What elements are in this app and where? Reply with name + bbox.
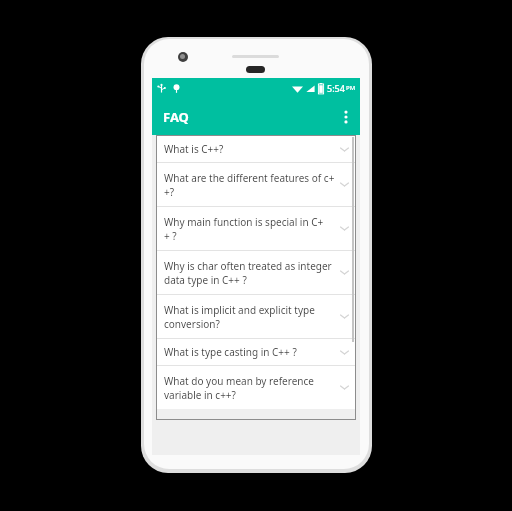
button[interactable]: What is type casting in C++ ?	[157, 339, 355, 365]
staticText: What do you mean by reference variable i…	[164, 374, 335, 402]
staticText: What are the different features of c++?	[164, 171, 335, 199]
button[interactable]: What are the different features of c++?	[157, 163, 355, 206]
staticText: What is C++?	[164, 142, 335, 156]
button[interactable]: What is implicit and explicit type conve…	[157, 295, 355, 338]
staticText: PM	[346, 84, 356, 92]
staticText: What is implicit and explicit type conve…	[164, 303, 335, 331]
staticText: Why main function is special in C++ ?	[164, 215, 335, 243]
button[interactable]: What is C++?	[157, 136, 355, 162]
staticText: FAQ	[163, 108, 189, 126]
button[interactable]: What do you mean by reference variable i…	[157, 366, 355, 409]
button[interactable]: Why is char often treated as integer dat…	[157, 251, 355, 294]
staticText: Why is char often treated as integer dat…	[164, 259, 335, 287]
staticText: What is type casting in C++ ?	[164, 345, 335, 359]
staticText: 5:54	[327, 82, 345, 94]
button[interactable]: More options	[332, 98, 360, 135]
button[interactable]: Why main function is special in C++ ?	[157, 207, 355, 250]
